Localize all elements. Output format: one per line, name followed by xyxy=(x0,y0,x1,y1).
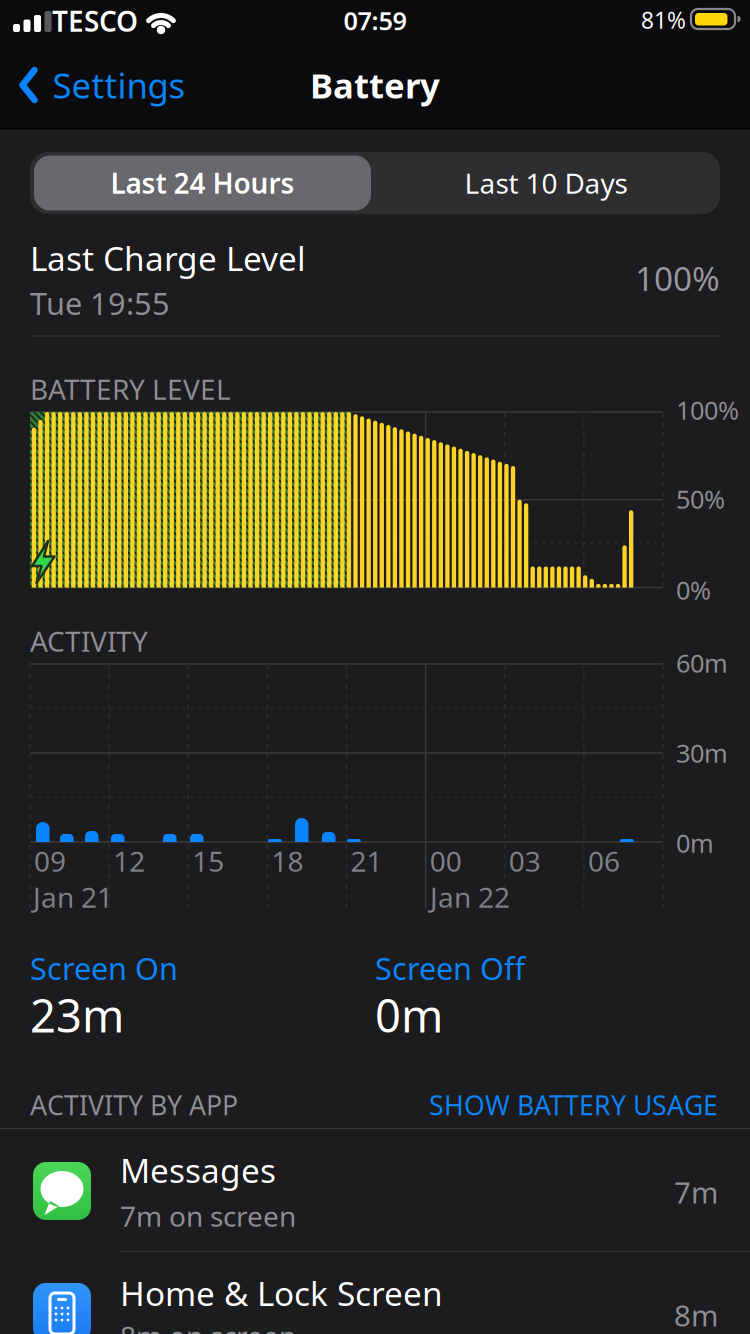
staticText: 0% xyxy=(676,573,711,607)
staticText: ACTIVITY xyxy=(30,622,148,660)
staticText: 00 xyxy=(430,842,462,880)
staticText: 18 xyxy=(271,842,303,880)
staticText: Messages xyxy=(120,1148,276,1192)
staticText: Battery xyxy=(310,62,440,108)
staticText: 8m on screen xyxy=(120,1317,296,1334)
staticText: Jan 22 xyxy=(430,878,510,916)
staticText: Settings xyxy=(52,62,185,108)
staticText: 0m xyxy=(676,826,714,860)
staticText: 8m xyxy=(674,1295,718,1334)
staticText: TESCO xyxy=(52,2,138,40)
staticText: SHOW BATTERY USAGE xyxy=(429,1087,718,1123)
staticText: BATTERY LEVEL xyxy=(30,370,231,408)
staticText: 15 xyxy=(192,842,224,880)
staticText: Home & Lock Screen xyxy=(120,1271,443,1315)
staticText: 100% xyxy=(676,393,739,427)
staticText: 23m xyxy=(30,985,124,1045)
button[interactable]: Last 10 Days xyxy=(376,155,716,210)
staticText: 21 xyxy=(350,842,382,880)
staticText: 06 xyxy=(588,842,620,880)
staticText: 12 xyxy=(113,842,145,880)
staticText: 09 xyxy=(34,842,66,880)
staticText: 03 xyxy=(509,842,541,880)
staticText: 60m xyxy=(676,646,728,680)
button[interactable]: Messages xyxy=(0,1129,750,1251)
staticText: ACTIVITY BY APP xyxy=(30,1087,238,1123)
staticText: 07:59 xyxy=(343,4,406,37)
button[interactable]: Last 24 Hours xyxy=(34,155,371,210)
staticText: Screen Off xyxy=(375,948,525,988)
staticText: Last Charge Level xyxy=(30,236,306,280)
staticText: Last 24 Hours xyxy=(110,164,294,202)
button[interactable]: SHOW BATTERY USAGE xyxy=(278,1087,718,1123)
button[interactable]: Home & Lock Screen xyxy=(0,1252,750,1334)
staticText: 30m xyxy=(676,736,728,770)
staticText: 0m xyxy=(375,985,443,1045)
staticText: 100% xyxy=(635,256,720,300)
staticText: Jan 21 xyxy=(33,878,113,916)
staticText: Screen On xyxy=(30,948,178,988)
staticText: 50% xyxy=(676,482,725,516)
staticText: 7m xyxy=(674,1172,718,1211)
staticText: Tue 19:55 xyxy=(30,283,170,323)
staticText: Last 10 Days xyxy=(464,164,627,202)
button[interactable]: Back to Settings xyxy=(20,62,185,108)
staticText: 81% xyxy=(641,5,686,35)
staticText: 7m on screen xyxy=(120,1197,296,1235)
